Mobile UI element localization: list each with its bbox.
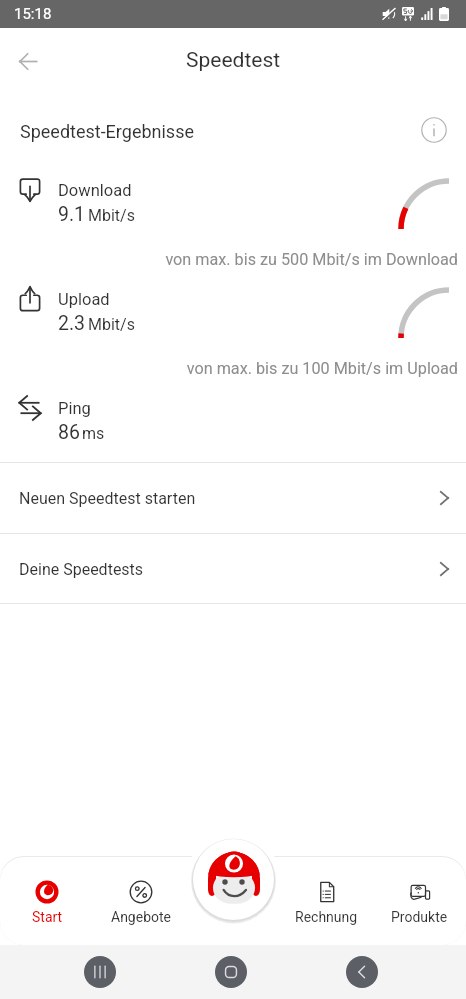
button[interactable]: Info <box>417 113 451 147</box>
staticText: Download <box>58 181 132 200</box>
staticText: Mbit/s <box>88 206 135 225</box>
staticText: 86 <box>58 421 80 444</box>
staticText: ms <box>82 424 105 443</box>
staticText: von max. bis zu 100 Mbit/s im Upload <box>0 359 458 378</box>
staticText: Start <box>32 909 63 925</box>
staticText: Deine Speedtests <box>19 560 144 579</box>
staticText: 2.3 <box>58 312 86 335</box>
staticText: 15:18 <box>14 5 52 23</box>
button[interactable]: Deine Speedtests <box>0 534 466 604</box>
button[interactable]: Back <box>10 43 46 79</box>
button[interactable]: Back <box>346 956 378 988</box>
button[interactable]: Produkte <box>373 858 466 945</box>
staticText: Upload <box>58 290 110 309</box>
button[interactable]: Recent apps <box>84 956 116 988</box>
staticText: Rechnung <box>295 909 358 925</box>
button[interactable]: Neuen Speedtest starten <box>0 463 466 533</box>
staticText: 9.1 <box>58 203 86 226</box>
button[interactable]: TOBi Assistant <box>191 837 276 922</box>
staticText: Angebote <box>111 909 171 925</box>
staticText: Speedtest-Ergebnisse <box>20 121 194 142</box>
staticText: Speedtest <box>186 48 281 73</box>
staticText: von max. bis zu 500 Mbit/s im Download <box>0 250 458 269</box>
staticText: Ping <box>58 399 91 418</box>
staticText: Produkte <box>391 909 448 925</box>
staticText: Neuen Speedtest starten <box>19 489 196 508</box>
button[interactable]: Rechnung <box>280 858 373 945</box>
button[interactable]: Start <box>0 858 94 945</box>
staticText: Mbit/s <box>88 315 135 334</box>
button[interactable]: Home <box>215 956 247 988</box>
button[interactable]: Angebote <box>94 858 187 945</box>
